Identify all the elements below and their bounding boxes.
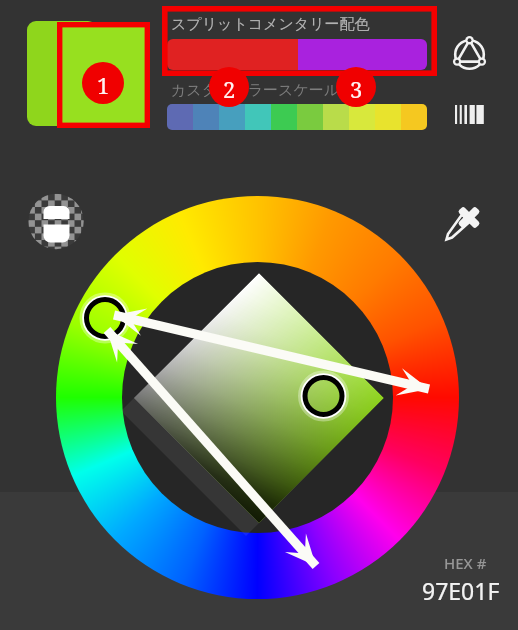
staticText: カスタムカラースケール	[171, 81, 340, 100]
staticText: 1	[97, 70, 110, 100]
button[interactable]: Current colour swatch	[24, 18, 148, 130]
staticText: HEX #	[444, 553, 487, 573]
staticText: 3	[350, 74, 363, 104]
button[interactable]: Transparency	[28, 194, 84, 250]
staticText: 97E01F	[422, 575, 500, 606]
button[interactable]: Colour harmony	[446, 32, 492, 78]
staticText: 2	[223, 74, 236, 104]
button[interactable]	[165, 78, 433, 134]
staticText: スプリットコメンタリー配色	[171, 15, 370, 34]
button[interactable]	[165, 12, 433, 74]
button[interactable]: Colour wheel	[56, 196, 459, 599]
button[interactable]: Eyedropper	[440, 192, 490, 244]
button[interactable]: Colour scale	[446, 92, 492, 134]
